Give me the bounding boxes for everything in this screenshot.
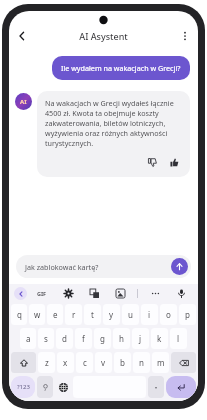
button[interactable]: v (95, 352, 112, 373)
button[interactable]: j (132, 328, 149, 349)
staticText: AI (20, 98, 27, 106)
button[interactable]: Emoji (37, 376, 53, 398)
button[interactable]: Shift (11, 352, 36, 373)
staticText: f (82, 333, 85, 344)
button[interactable]: Enter (166, 376, 196, 398)
button[interactable]: Send (171, 258, 188, 275)
button[interactable]: d (56, 328, 73, 349)
staticText: z (45, 357, 49, 368)
button[interactable]: n (133, 352, 150, 373)
staticText: Jak zablokować kartę? (25, 262, 171, 272)
staticText: q (17, 309, 22, 320)
button[interactable]: More (147, 285, 163, 301)
button[interactable]: Like (167, 155, 182, 170)
staticText: l (177, 333, 180, 344)
staticText: e (53, 309, 58, 320)
button[interactable]: y (103, 304, 120, 325)
button[interactable]: m (152, 352, 169, 373)
button[interactable]: Jak zablokować kartę? (16, 255, 191, 278)
button[interactable]: Period (148, 376, 164, 398)
staticText: y (109, 309, 114, 320)
button[interactable]: More options (175, 26, 195, 46)
staticText: p (185, 309, 190, 320)
staticText: AI Asystent (79, 30, 128, 42)
button[interactable]: o (160, 304, 177, 325)
staticText: k (157, 333, 162, 344)
button[interactable]: Collapse toolbar (14, 287, 27, 300)
button[interactable]: r (65, 304, 82, 325)
staticText: j (139, 333, 142, 344)
button[interactable]: Settings (60, 285, 76, 301)
button[interactable]: Dislike (145, 155, 160, 170)
button[interactable]: s (38, 328, 54, 349)
button[interactable]: x (57, 352, 74, 373)
staticText: a (26, 333, 31, 344)
staticText: o (166, 309, 171, 320)
button[interactable]: e (47, 304, 63, 325)
button[interactable]: Ile wydałem na wakacjach w Grecji? (52, 56, 190, 80)
button[interactable]: Na wakacjach w Grecji wydałeś łącznie 45… (37, 91, 190, 177)
button[interactable]: Back (12, 26, 32, 46)
staticText: Ile wydałem na wakacjach w Grecji? (61, 63, 181, 73)
staticText: v (101, 357, 106, 368)
button[interactable]: t (84, 304, 101, 325)
button[interactable]: f (75, 328, 92, 349)
button[interactable]: Voice input (173, 285, 189, 301)
staticText: s (44, 333, 48, 344)
staticText: i (148, 309, 151, 320)
staticText: r (72, 309, 76, 320)
button[interactable]: q (11, 304, 27, 325)
button[interactable]: b (114, 352, 131, 373)
staticText: m (157, 357, 165, 368)
staticText: x (63, 357, 68, 368)
staticText: n (139, 357, 144, 368)
staticText: u (128, 309, 133, 320)
button[interactable]: GIF (34, 285, 50, 301)
button[interactable]: z (38, 352, 55, 373)
button[interactable]: Backspace (171, 352, 196, 373)
staticText: Na wakacjach w Grecji wydałeś łącznie 45… (45, 98, 182, 148)
staticText: d (62, 333, 67, 344)
staticText: c (83, 357, 87, 368)
staticText: w (34, 309, 41, 320)
staticText: ?123 (17, 383, 30, 391)
button[interactable]: i (141, 304, 158, 325)
staticText: GIF (37, 290, 47, 297)
button[interactable]: g (94, 328, 111, 349)
button[interactable]: a (20, 328, 36, 349)
button[interactable]: k (151, 328, 168, 349)
staticText: t (91, 309, 94, 320)
button[interactable]: u (122, 304, 139, 325)
button[interactable]: Translate (86, 285, 102, 301)
button[interactable]: l (170, 328, 187, 349)
staticText: g (100, 333, 105, 344)
button[interactable]: h (113, 328, 130, 349)
button[interactable]: Change language (55, 376, 71, 398)
button[interactable]: w (29, 304, 45, 325)
button[interactable]: ?123 (11, 376, 35, 398)
button[interactable]: p (179, 304, 196, 325)
button[interactable]: c (76, 352, 93, 373)
button[interactable]: Stickers (112, 285, 128, 301)
staticText: h (119, 333, 124, 344)
staticText: b (120, 357, 125, 368)
